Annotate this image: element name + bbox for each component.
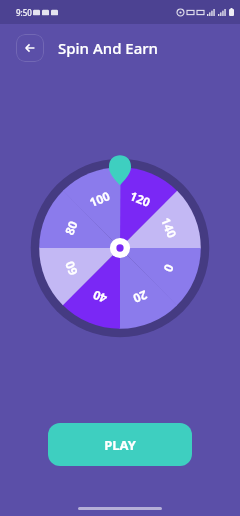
staticText: Spin And Earn [58, 38, 159, 58]
button[interactable]: PLAY [48, 423, 192, 466]
button[interactable]: Prize wheel [24, 149, 216, 341]
staticText: PLAY [104, 436, 136, 454]
button[interactable]: Back [16, 34, 44, 62]
staticText: 9:50 [16, 7, 32, 18]
